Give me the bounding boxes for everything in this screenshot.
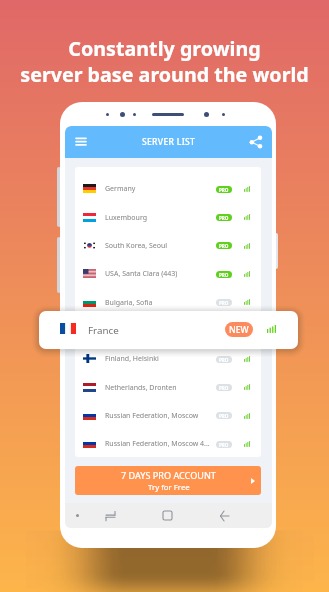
staticText: Russian Federation, Moscow 4...	[105, 439, 210, 449]
staticText: PRO	[219, 357, 229, 363]
button[interactable]: Finland, Helsinki	[75, 350, 261, 367]
staticText: PRO	[219, 187, 229, 193]
button[interactable]: Germany	[75, 180, 261, 197]
button[interactable]: Netherlands, Dronten	[75, 379, 261, 396]
staticText: PRO	[219, 385, 229, 391]
staticText: Bulgaria, Sofia	[105, 298, 153, 308]
staticText: Russian Federation, Moscow	[105, 411, 199, 421]
button[interactable]: South Korea, Seoul	[75, 237, 261, 254]
staticText: NEW	[229, 324, 249, 336]
staticText: South Korea, Seoul	[105, 241, 168, 251]
button[interactable]: France	[39, 311, 298, 349]
button[interactable]: Russian Federation, Moscow	[75, 407, 261, 424]
staticText: SERVER LIST	[142, 136, 196, 148]
staticText: USA, Santa Clara (443)	[105, 269, 178, 279]
button[interactable]: Russian Federation, Moscow 4...	[75, 435, 261, 452]
button[interactable]: USA, Santa Clara (443)	[75, 265, 261, 282]
button[interactable]: Back	[220, 511, 229, 521]
staticText: Germany	[105, 184, 136, 194]
button[interactable]: Recents	[106, 511, 115, 521]
staticText: PRO	[219, 300, 229, 306]
staticText: Netherlands, Dronten	[105, 383, 177, 393]
staticText: PRO	[219, 442, 229, 448]
staticText: Constantly growing server base around th…	[0, 35, 329, 88]
button[interactable]: Bulgaria, Sofia	[75, 294, 261, 311]
staticText: PRO	[219, 243, 229, 249]
staticText: Try for Free	[148, 482, 190, 493]
button[interactable]: 7 DAYS PRO ACCOUNT	[75, 466, 261, 495]
button[interactable]: Luxembourg	[75, 209, 261, 226]
staticText: Finland, Helsinki	[105, 354, 159, 364]
button[interactable]: Home	[163, 511, 172, 520]
button[interactable]: Menu	[74, 135, 88, 149]
staticText: Luxembourg	[105, 213, 148, 223]
button[interactable]: Share	[248, 134, 264, 150]
staticText: PRO	[219, 272, 229, 278]
staticText: France	[88, 324, 119, 337]
staticText: PRO	[219, 215, 229, 221]
staticText: 7 DAYS PRO ACCOUNT	[121, 469, 216, 481]
staticText: PRO	[219, 413, 229, 419]
